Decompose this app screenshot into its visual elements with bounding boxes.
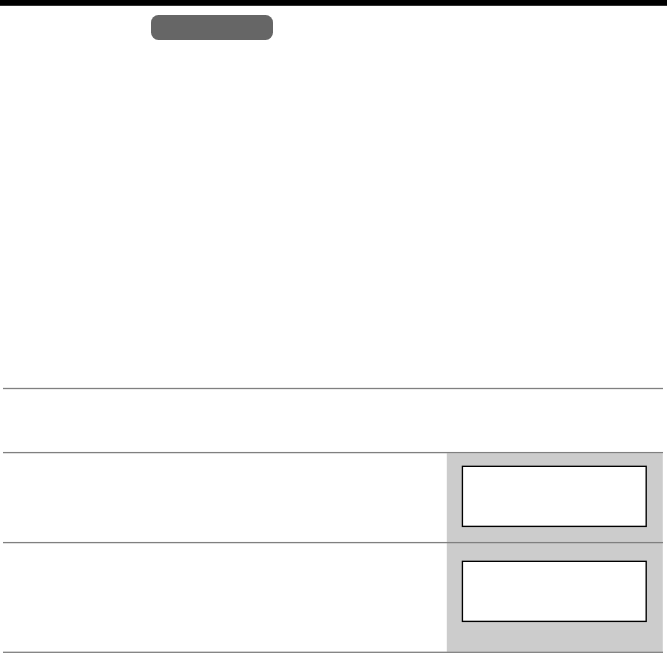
button[interactable]: Second input field bbox=[462, 561, 647, 623]
button[interactable]: First input field bbox=[462, 466, 647, 527]
button[interactable]: Primary action button bbox=[151, 15, 273, 40]
